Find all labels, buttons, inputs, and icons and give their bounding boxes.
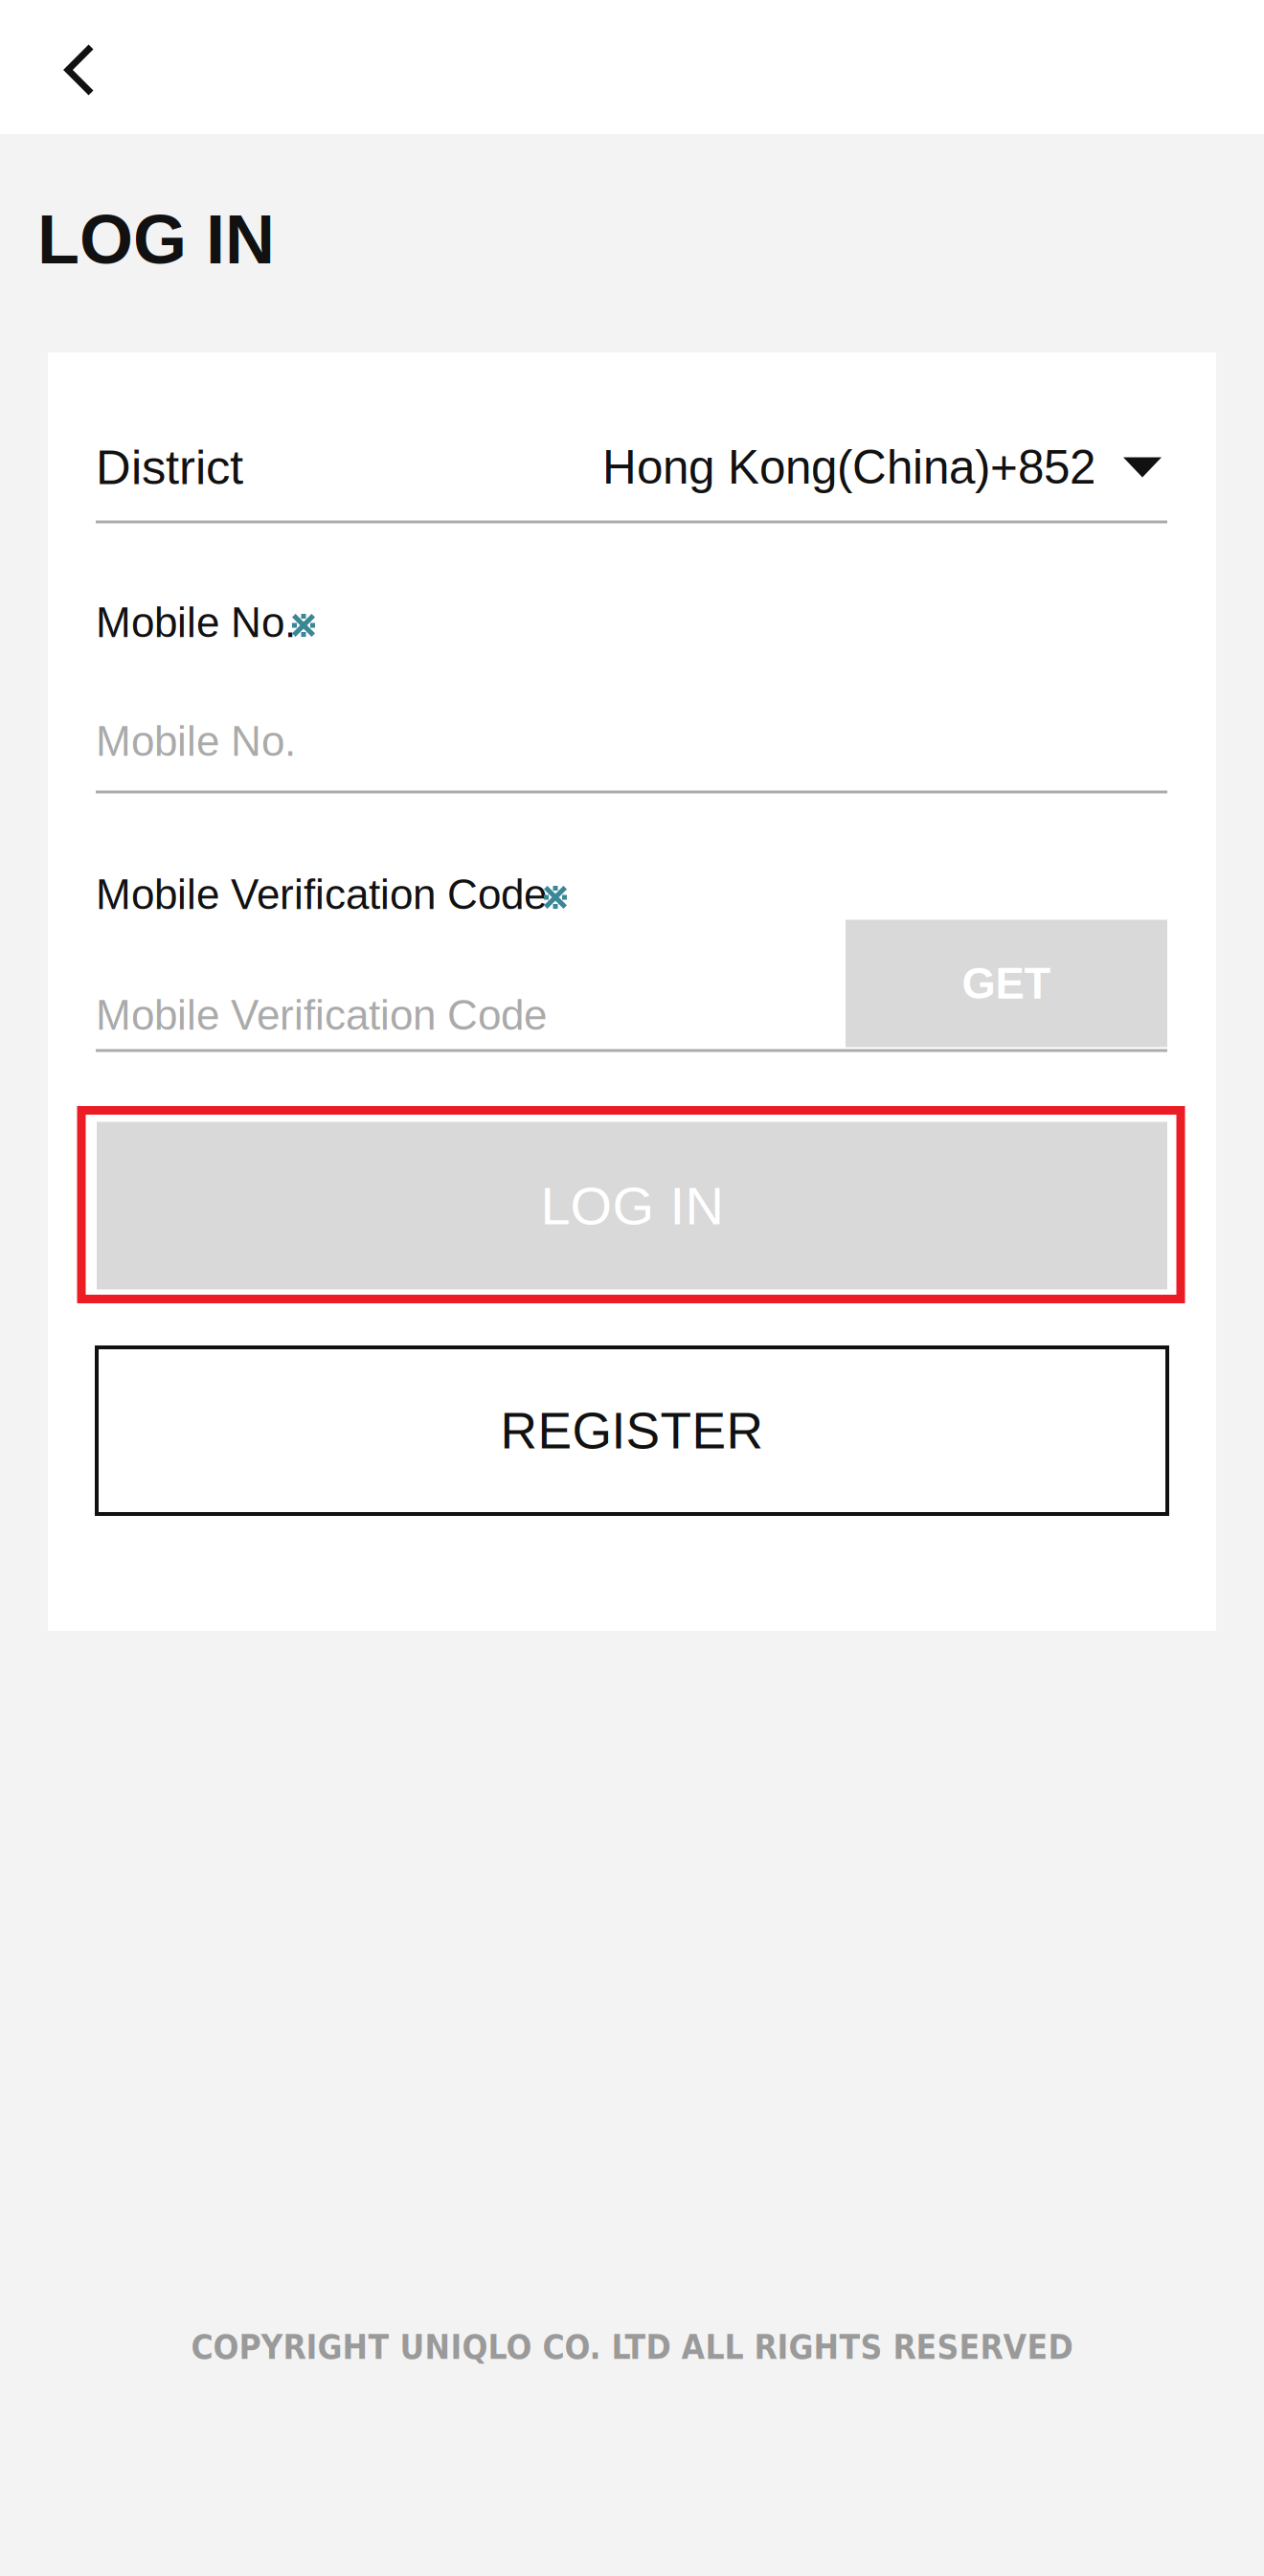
button[interactable]: LOG IN (97, 1122, 1167, 1289)
staticText: Hong Kong(China)+852 (602, 441, 1095, 494)
button[interactable]: District (96, 424, 1167, 510)
staticText: REGISTER (500, 1402, 764, 1459)
staticText: Mobile No. (96, 718, 296, 765)
staticText: COPYRIGHT UNIQLO CO. LTD ALL RIGHTS RESE… (191, 2327, 1073, 2367)
staticText: Mobile No. (96, 599, 296, 646)
staticText: District (96, 440, 243, 494)
button[interactable]: GET (846, 920, 1167, 1047)
staticText: GET (962, 959, 1051, 1008)
staticText: Mobile Verification Code (96, 992, 547, 1039)
button[interactable]: Back (17, 3, 142, 137)
staticText: LOG IN (37, 201, 275, 278)
button[interactable]: REGISTER (97, 1347, 1167, 1514)
staticText: Mobile Verification Code (96, 871, 547, 918)
staticText: LOG IN (541, 1176, 723, 1236)
